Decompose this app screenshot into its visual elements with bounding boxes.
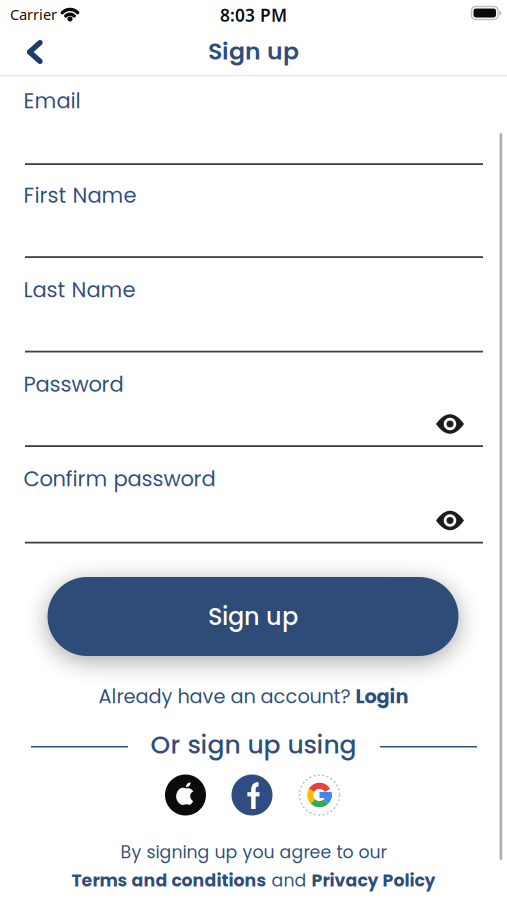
button[interactable]: Back [23,36,46,67]
staticText: Confirm password [23,464,215,494]
staticText: Or sign up using [150,727,356,762]
staticText: Last Name [23,275,135,305]
button[interactable]: Sign up with Facebook [231,774,272,815]
button[interactable]: Login [355,683,408,710]
staticText: Already have an account? [98,683,355,710]
staticText: Sign up [208,35,299,68]
staticText: 8:03 PM [220,3,287,26]
button[interactable]: Show confirm password [435,509,465,531]
button[interactable]: Show password [435,413,465,435]
staticText: Password [23,370,123,399]
button[interactable]: Sign up with Google [299,774,340,815]
staticText: Sign up [208,600,298,633]
button[interactable]: Sign up with Apple [165,774,206,815]
staticText: and [266,868,311,893]
staticText: Terms and conditions [71,868,266,893]
button[interactable]: Sign up [47,577,458,656]
staticText: Email [23,86,80,116]
staticText: Carrier [10,4,57,24]
staticText: Login [355,683,408,710]
button[interactable]: Terms and conditions [71,868,266,893]
staticText: By signing up you agree to our [120,840,386,864]
staticText: First Name [23,181,136,210]
button[interactable]: Privacy Policy [311,868,435,893]
staticText: Privacy Policy [311,868,435,893]
